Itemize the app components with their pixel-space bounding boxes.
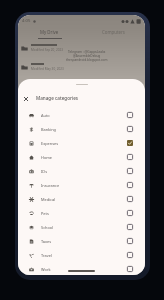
staticText: Manage categories: [36, 95, 79, 101]
button[interactable]: Expenses: [18, 136, 145, 150]
button[interactable]: Close: [19, 92, 32, 105]
button[interactable]: Home: [18, 150, 145, 164]
button[interactable]: IDs: [18, 164, 145, 178]
button[interactable]: Insurance: [18, 178, 145, 192]
button[interactable]: School: [18, 220, 145, 234]
staticText: IDs: [41, 169, 48, 174]
staticText: thespandroid.blogspot.com: [66, 58, 108, 62]
button[interactable]: Travel: [18, 248, 145, 262]
staticText: My Drive: [40, 29, 59, 35]
staticText: School: [41, 225, 54, 230]
staticText: Travel: [41, 253, 52, 258]
staticText: Auto: [41, 113, 50, 118]
button[interactable]: Auto: [18, 108, 145, 122]
button[interactable]: Banking: [18, 122, 145, 136]
staticText: Pets: [41, 211, 49, 216]
button[interactable]: Medical: [18, 192, 145, 206]
staticText: Modified May 30, 2023: [31, 67, 64, 71]
staticText: @AssembleDebug: [73, 54, 101, 58]
staticText: 4:05: [22, 18, 31, 24]
staticText: Modified Sep 20, 2023: [31, 48, 64, 52]
button[interactable]: Pets: [18, 206, 145, 220]
staticText: Insurance: [41, 183, 60, 188]
staticText: Home: [41, 155, 53, 160]
staticText: Expenses: [41, 141, 59, 146]
staticText: Work: [41, 267, 51, 272]
staticText: Taxes: [41, 239, 52, 244]
button[interactable]: Taxes: [18, 234, 145, 248]
staticText: Computers: [102, 29, 125, 35]
staticText: Medical: [41, 197, 56, 202]
button[interactable]: Work: [18, 262, 145, 275]
staticText: Telegram : @GappsLeaks: [68, 50, 106, 54]
staticText: Banking: [41, 127, 56, 132]
